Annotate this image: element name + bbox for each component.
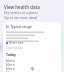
staticText: Today <box>6 52 16 57</box>
staticText: Metric <box>6 67 15 71</box>
button[interactable]: Metric <box>6 67 59 71</box>
staticText: View health data <box>4 4 40 10</box>
button[interactable]: Metric <box>6 59 59 63</box>
staticText: Metric <box>6 63 15 67</box>
staticText: Metric <box>6 71 15 72</box>
button[interactable]: Metric <box>6 71 59 72</box>
button[interactable]: In Typical range <box>3 22 61 72</box>
staticText: Tap to see more detail <box>4 16 38 20</box>
button[interactable]: Home <box>30 66 35 71</box>
staticText: Key metrics at a glance <box>4 11 39 15</box>
staticText: In Typical range <box>6 24 32 29</box>
staticText: Steps today <box>6 46 23 50</box>
staticText: Heart rate <box>9 41 24 45</box>
staticText: Metric <box>6 59 15 63</box>
button[interactable]: Metric <box>6 63 59 67</box>
